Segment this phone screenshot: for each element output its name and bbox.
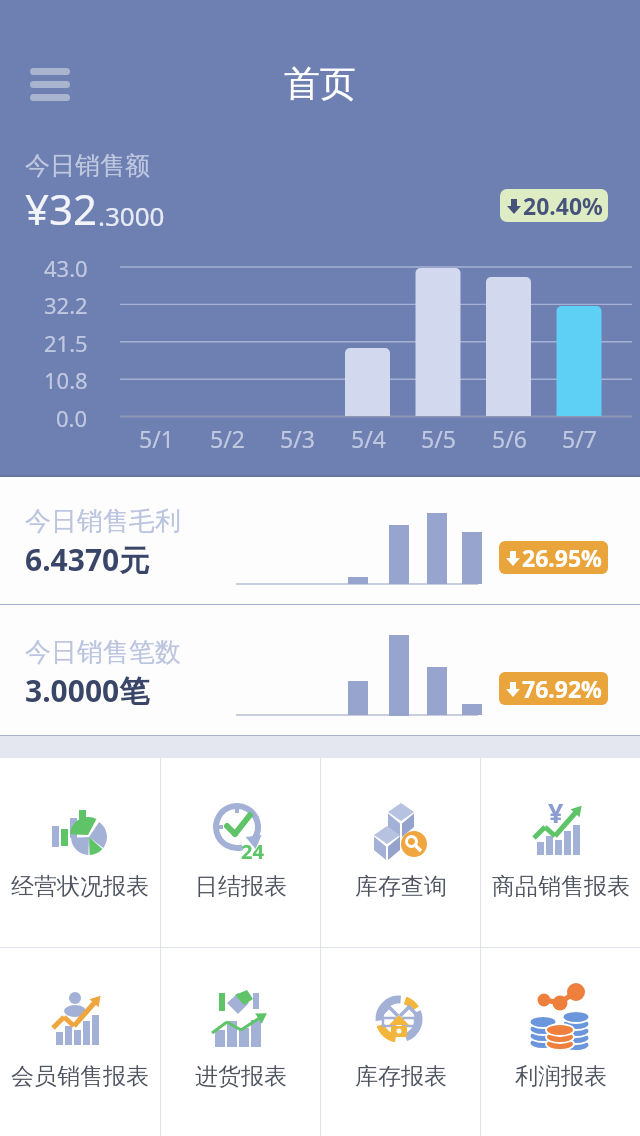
button[interactable]: 26.95% (499, 541, 608, 574)
button[interactable]: 利润报表 (481, 948, 640, 1136)
staticText: 5/7 (562, 423, 597, 451)
staticText: 5/4 (351, 423, 386, 451)
button[interactable]: 经营状况报表 (0, 758, 160, 947)
staticText: 会员销售报表 (11, 1062, 149, 1091)
staticText: 商品销售报表 (492, 872, 630, 901)
button[interactable]: ¥ (481, 758, 640, 947)
button[interactable] (26, 64, 74, 108)
button[interactable]: 进货报表 (161, 948, 320, 1136)
button[interactable]: 今日销售毛利 (0, 477, 640, 604)
staticText: 43.0 (44, 253, 88, 281)
staticText: 进货报表 (195, 1062, 287, 1091)
staticText: 5/6 (492, 423, 527, 451)
staticText: 5/3 (280, 423, 315, 451)
staticText: 5/5 (421, 423, 456, 451)
staticText: ¥32 (25, 180, 98, 237)
staticText: 76.92% (522, 673, 602, 704)
button[interactable]: 76.92% (499, 672, 608, 705)
staticText: 26.95% (522, 542, 602, 573)
staticText: 库存报表 (355, 1062, 447, 1091)
staticText: 日结报表 (195, 872, 287, 901)
staticText: 今日销售毛利 (25, 505, 181, 538)
staticText: 6.4370元 (25, 539, 150, 580)
button[interactable]: 库存查询 (321, 758, 480, 947)
staticText: 库存查询 (355, 872, 447, 901)
staticText: 今日销售笔数 (25, 636, 181, 669)
staticText: 经营状况报表 (11, 872, 149, 901)
staticText: 32.2 (44, 290, 88, 318)
staticText: 5/1 (139, 423, 174, 451)
staticText: 21.5 (44, 328, 88, 356)
button[interactable]: 24 (161, 758, 320, 947)
staticText: 24 (241, 838, 264, 865)
staticText: 5/2 (210, 423, 245, 451)
staticText: 首页 (284, 61, 356, 106)
button[interactable]: 会员销售报表 (0, 948, 160, 1136)
staticText: 10.8 (44, 365, 88, 393)
staticText: 20.40% (523, 190, 603, 221)
staticText: 3.0000笔 (25, 670, 150, 711)
staticText: 利润报表 (515, 1062, 607, 1091)
staticText: 今日销售额 (25, 150, 150, 181)
staticText: .3000 (98, 198, 165, 233)
staticText: 0.0 (56, 403, 88, 431)
button[interactable]: 今日销售笔数 (0, 605, 640, 735)
button[interactable]: 20.40% (500, 189, 608, 222)
staticText: ¥ (548, 794, 564, 831)
button[interactable]: 库存报表 (321, 948, 480, 1136)
